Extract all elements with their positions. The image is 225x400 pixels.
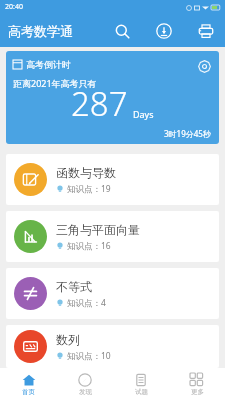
button[interactable]: 高考倒计时 — [6, 51, 219, 144]
button[interactable]: 三角与平面向量 — [6, 211, 219, 262]
staticText: 3时19分45秒 — [164, 128, 211, 139]
staticText: 20:40 — [5, 2, 23, 12]
button[interactable]: 发现 — [57, 368, 113, 400]
staticText: 高考数学通 — [8, 23, 73, 39]
staticText: 不等式 — [56, 279, 92, 294]
staticText: 距离2021年高考只有 — [13, 77, 97, 89]
staticText: 发现 — [79, 388, 92, 396]
button[interactable]: Print — [194, 19, 218, 43]
button[interactable]: 数列 — [6, 325, 219, 368]
staticText: 首页 — [22, 388, 35, 396]
button[interactable]: 函数与导数 — [6, 154, 219, 205]
button[interactable]: Search — [110, 19, 134, 43]
staticText: 知识点：10 — [67, 350, 111, 362]
staticText: 287 — [71, 81, 128, 126]
staticText: 高考倒计时 — [26, 59, 71, 70]
staticText: 知识点：16 — [67, 240, 111, 252]
button[interactable]: 首页 — [0, 368, 57, 400]
button[interactable]: 试题 — [113, 368, 169, 400]
staticText: 函数与导数 — [56, 165, 116, 180]
staticText: 知识点：4 — [67, 297, 106, 309]
staticText: 试题 — [135, 388, 148, 396]
button[interactable]: 不等式 — [6, 268, 219, 319]
button[interactable]: Settings — [195, 57, 213, 75]
staticText: 知识点：19 — [67, 183, 111, 195]
staticText: 更多 — [191, 388, 204, 396]
staticText: 数列 — [56, 332, 80, 347]
staticText: 三角与平面向量 — [56, 222, 140, 237]
button[interactable]: 更多 — [169, 368, 225, 400]
button[interactable]: Download — [152, 19, 176, 43]
staticText: Days — [133, 108, 154, 120]
